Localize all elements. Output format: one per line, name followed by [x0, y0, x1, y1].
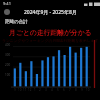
staticText: 100 — [5, 73, 11, 77]
staticText: 5 — [57, 88, 59, 92]
staticText: 月ごとの走行距離が分かる — [9, 28, 92, 37]
staticText: 11 — [23, 88, 27, 92]
staticText: 1 — [34, 88, 36, 92]
staticText: 距離の合計 — [5, 19, 28, 25]
staticText: 9 — [14, 88, 16, 92]
staticText: 200 — [5, 63, 11, 67]
staticText: 10 — [18, 88, 22, 92]
staticText: 8 — [75, 88, 77, 92]
staticText: ランニングやウォーキングの月間走行距離を表示します — [2, 38, 99, 43]
staticText: 2 — [39, 88, 41, 92]
staticText: 9:41 — [3, 1, 11, 6]
staticText: 400 — [5, 43, 11, 47]
staticText: 300 — [5, 53, 11, 57]
button[interactable]: Profile — [2, 7, 12, 17]
staticText: 10 — [86, 88, 90, 92]
staticText: 2024年9月 - 2025年8月 — [24, 9, 77, 16]
staticText: 4 — [51, 88, 53, 92]
staticText: 7 — [69, 88, 71, 92]
staticText: 3 — [45, 88, 47, 92]
staticText: 6 — [63, 88, 65, 92]
staticText: 9 — [81, 88, 83, 92]
staticText: 12 — [28, 88, 32, 92]
